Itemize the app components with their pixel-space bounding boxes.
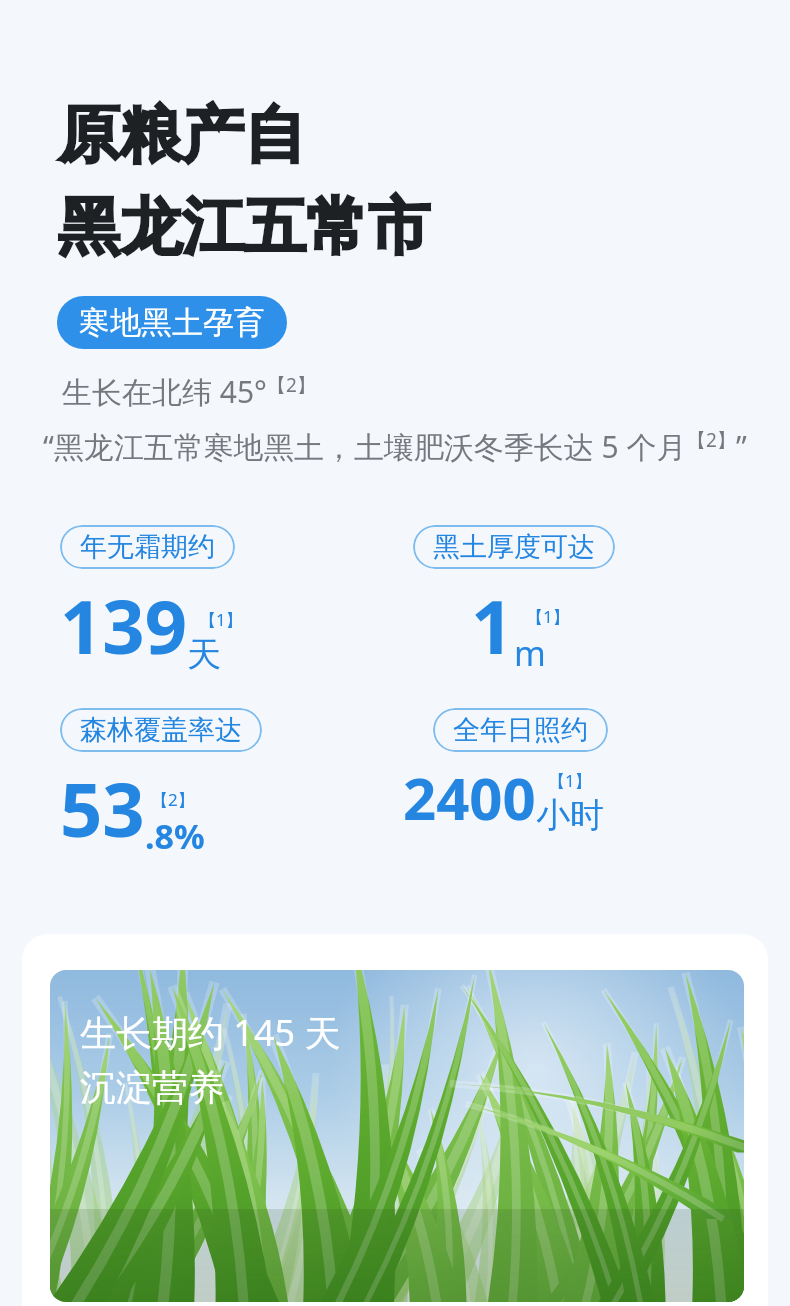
staticText: 【1】 xyxy=(526,605,570,628)
staticText: .8% xyxy=(145,813,205,859)
button[interactable]: 年无霜期约 xyxy=(60,525,235,569)
staticText: 黑土厚度可达 xyxy=(433,530,595,564)
staticText: 寒地黑土孕育 xyxy=(79,303,265,342)
staticText: m xyxy=(514,630,546,676)
staticText: 小时 xyxy=(536,794,604,837)
staticText: 【2】 xyxy=(687,427,736,453)
staticText: ” xyxy=(736,426,747,467)
staticText: “黑龙江五常寒地黑土，土壤肥沃冬季长达 5 个月 xyxy=(43,426,687,467)
button[interactable]: 黑土厚度可达 xyxy=(413,525,615,569)
staticText: 1 xyxy=(471,575,514,676)
staticText: 【2】 xyxy=(267,372,316,398)
staticText: 【1】 xyxy=(199,608,243,631)
staticText: 53 xyxy=(60,758,145,859)
staticText: 【2】 xyxy=(151,788,195,811)
button[interactable]: 寒地黑土孕育 xyxy=(57,296,287,349)
staticText: 天 xyxy=(187,633,221,676)
staticText: 生长期约 145 天 xyxy=(80,1008,341,1057)
staticText: 2400 xyxy=(403,758,536,837)
staticText: 年无霜期约 xyxy=(80,530,215,564)
staticText: 原粮产自 xyxy=(58,96,306,174)
staticText: 【1】 xyxy=(548,769,592,792)
button[interactable]: 生长期约 145 天 xyxy=(22,934,768,1306)
button[interactable]: 森林覆盖率达 xyxy=(60,708,262,752)
button[interactable]: 全年日照约 xyxy=(433,708,608,752)
staticText: 沉淀营养 xyxy=(80,1065,224,1110)
staticText: 全年日照约 xyxy=(453,713,588,747)
staticText: 生长在北纬 45° xyxy=(62,371,267,412)
staticText: 森林覆盖率达 xyxy=(80,713,242,747)
staticText: 黑龙江五常市 xyxy=(58,188,430,266)
staticText: 139 xyxy=(60,575,187,676)
